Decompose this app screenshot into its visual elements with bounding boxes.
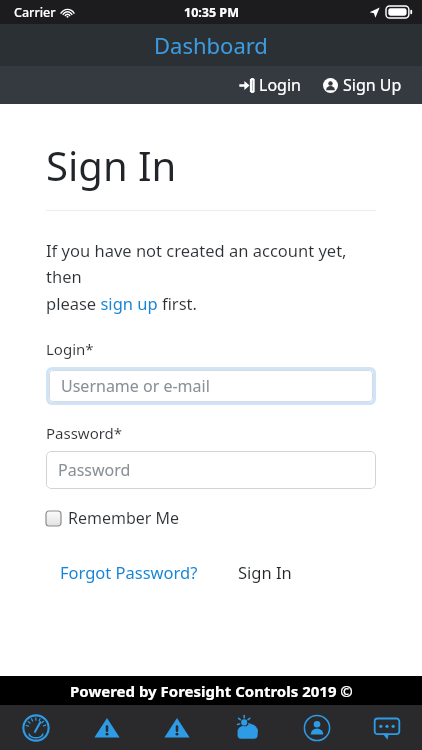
- staticText: If you have not created an account yet, …: [46, 239, 376, 315]
- button[interactable]: Password: [46, 451, 376, 489]
- button[interactable]: Sign Up: [317, 70, 408, 100]
- staticText: Powered by Foresight Controls 2019 ©: [70, 681, 353, 701]
- button[interactable]: Sign In: [228, 555, 302, 589]
- staticText: Username or e-mail: [61, 375, 210, 397]
- staticText: Forgot Password?: [60, 561, 198, 583]
- staticText: Login: [259, 74, 301, 96]
- button[interactable]: Alerts: [142, 705, 212, 750]
- staticText: Remember Me: [68, 507, 180, 529]
- button[interactable]: Username or e-mail: [49, 370, 373, 402]
- button[interactable]: Dashboard: [0, 705, 71, 750]
- staticText: Sign In: [238, 561, 292, 583]
- staticText: Carrier: [14, 4, 56, 21]
- button[interactable]: Messages: [352, 705, 422, 750]
- button[interactable]: Login: [233, 70, 307, 100]
- button[interactable]: Alarms: [71, 705, 142, 750]
- staticText: Sign In: [46, 138, 177, 192]
- staticText: Password: [58, 459, 131, 481]
- staticText: 10:35 PM: [184, 4, 239, 21]
- button[interactable]: Forgot Password?: [46, 555, 212, 589]
- staticText: Login*: [46, 339, 94, 359]
- staticText: Password*: [46, 423, 123, 443]
- button[interactable]: Weather: [212, 705, 282, 750]
- staticText: Dashboard: [154, 30, 268, 60]
- button[interactable]: Remember Me: [46, 507, 180, 529]
- staticText: Sign Up: [343, 74, 402, 96]
- button[interactable]: Account: [282, 705, 352, 750]
